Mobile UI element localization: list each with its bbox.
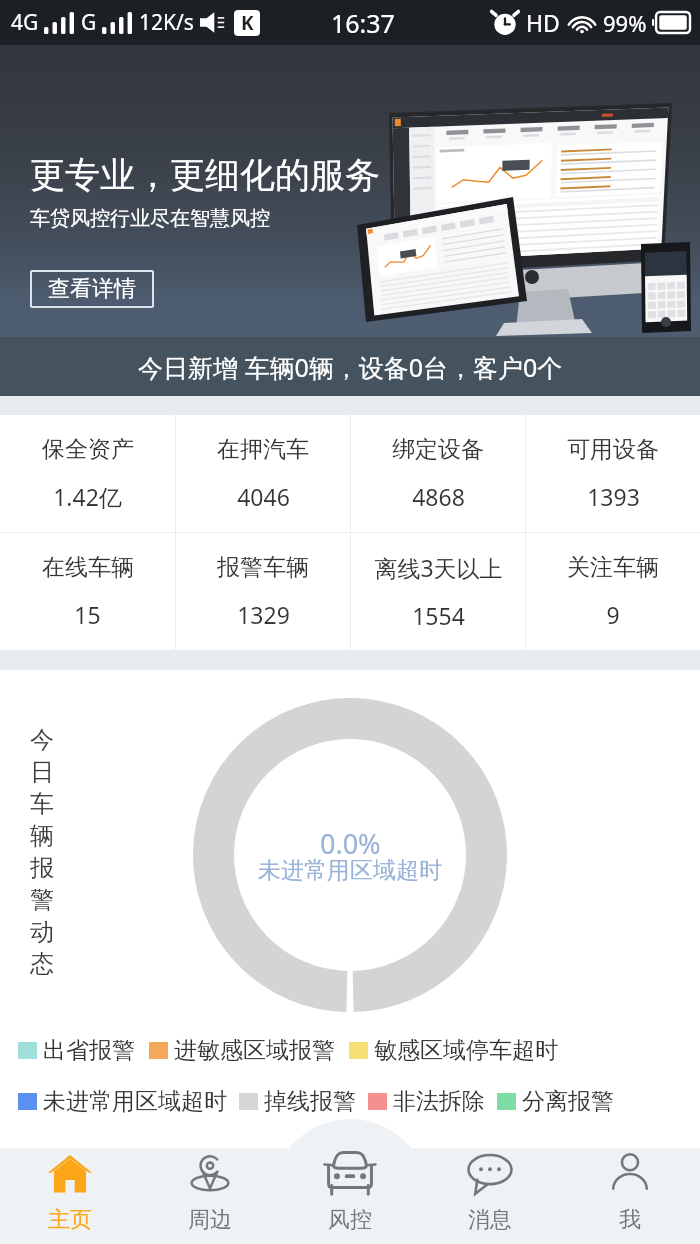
staticText: 态 [30,949,54,979]
staticText: 我 [619,1206,641,1234]
button[interactable]: 可用设备 [526,415,700,532]
staticText: 消息 [468,1206,512,1234]
staticText: 离线3天以上 [374,552,503,583]
button[interactable]: 绑定设备 [351,415,525,532]
staticText: 报警车辆 [217,553,309,582]
staticText: 今日新增 车辆0辆，设备0台，客户0个 [138,350,563,384]
staticText: 12K/s [139,8,194,37]
staticText: K [241,10,254,36]
button[interactable]: 离线3天以上 [351,533,525,650]
button[interactable]: 我 [560,1148,700,1244]
staticText: 16:37 [331,6,395,40]
staticText: 在押汽车 [217,435,309,464]
staticText: 查看详情 [48,275,136,303]
button[interactable]: 在押汽车 [176,415,350,532]
staticText: 未进常用区域超时 [258,856,442,885]
staticText: 警 [30,885,54,915]
button[interactable]: 在线车辆 [0,533,175,650]
staticText: 更专业，更细化的服务 [30,153,380,197]
staticText: 分离报警 [522,1087,614,1116]
staticText: 敏感区域停车超时 [374,1036,558,1065]
staticText: HD [526,7,560,38]
staticText: 主页 [48,1206,92,1234]
staticText: 保全资产 [42,435,134,464]
staticText: 4868 [412,481,465,512]
staticText: 周边 [188,1206,232,1234]
staticText: 99% [603,8,647,38]
button[interactable]: 周边 [140,1148,280,1244]
button[interactable]: 主页 [0,1148,140,1244]
staticText: 掉线报警 [264,1087,356,1116]
staticText: 在线车辆 [42,553,134,582]
button[interactable]: 风控 [280,1148,420,1244]
staticText: 动 [30,917,54,947]
staticText: 1554 [412,600,465,631]
staticText: 辆 [30,821,54,851]
staticText: 1393 [587,481,640,512]
staticText: 车 [30,789,54,819]
staticText: 1.42亿 [53,481,122,512]
button[interactable]: 查看详情 [30,270,154,308]
staticText: 今 [30,725,54,755]
staticText: 报 [30,853,54,883]
staticText: 出省报警 [43,1036,135,1065]
staticText: 日 [30,757,54,787]
staticText: 车贷风控行业尽在智慧风控 [30,206,270,231]
staticText: 4046 [237,481,290,512]
staticText: 进敏感区域报警 [174,1036,335,1065]
staticText: 未进常用区域超时 [43,1087,227,1116]
staticText: 可用设备 [567,435,659,464]
staticText: G [81,8,97,37]
staticText: 0.0% [320,825,381,862]
staticText: 1329 [237,599,290,630]
staticText: 4G [11,8,39,37]
staticText: 非法拆除 [393,1087,485,1116]
staticText: 绑定设备 [392,435,484,464]
button[interactable]: 关注车辆 [526,533,700,650]
staticText: 9 [606,599,620,630]
staticText: 风控 [328,1206,372,1234]
button[interactable]: 保全资产 [0,415,175,532]
staticText: 15 [74,599,101,630]
staticText: 关注车辆 [567,553,659,582]
button[interactable]: 消息 [420,1148,560,1244]
button[interactable]: 报警车辆 [176,533,350,650]
